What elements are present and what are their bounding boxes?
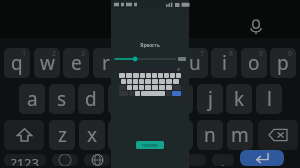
button[interactable]: m <box>227 120 253 150</box>
button[interactable]: d <box>78 84 104 114</box>
button[interactable]: Key <box>166 79 172 84</box>
button[interactable]: s <box>49 84 75 114</box>
button[interactable]: n <box>197 120 223 150</box>
staticText: 9 <box>259 49 264 59</box>
button[interactable]: . <box>212 154 234 166</box>
button[interactable]: Enter <box>240 150 284 166</box>
button[interactable]: Key <box>146 73 151 78</box>
staticText: o <box>248 50 260 76</box>
staticText: d <box>85 86 97 112</box>
staticText: 7 <box>200 49 205 59</box>
button[interactable]: u <box>182 48 208 78</box>
button[interactable]: i <box>211 48 237 78</box>
button[interactable]: Key <box>140 73 145 78</box>
staticText: g <box>144 86 156 112</box>
button[interactable]: Key <box>127 79 132 84</box>
staticText: 0 <box>288 49 293 59</box>
staticText: 3 <box>81 49 86 59</box>
button[interactable]: Key <box>139 79 144 84</box>
button[interactable]: Key <box>121 79 126 84</box>
button[interactable]: Key <box>145 85 151 90</box>
button[interactable]: Space <box>116 154 206 166</box>
button[interactable]: Key <box>159 79 165 84</box>
button[interactable]: Key <box>152 73 157 78</box>
button[interactable]: Key <box>133 85 138 90</box>
staticText: Яркость <box>111 42 189 49</box>
button[interactable]: Key <box>152 85 158 90</box>
button[interactable]: Emoji <box>52 154 78 166</box>
button[interactable]: a <box>19 84 45 114</box>
button[interactable]: Key <box>133 79 138 84</box>
staticText: p <box>277 50 289 76</box>
button[interactable]: ГОТОВО <box>136 141 164 149</box>
button[interactable]: Key <box>159 85 165 90</box>
button[interactable]: Key <box>145 79 151 84</box>
staticText: n <box>204 122 216 148</box>
button[interactable]: Key <box>176 73 181 78</box>
staticText: 5 <box>140 49 145 59</box>
staticText: 8 <box>229 49 234 59</box>
button[interactable]: y <box>152 48 178 78</box>
staticText: u <box>189 50 201 76</box>
staticText: q <box>11 50 23 76</box>
button[interactable]: Space <box>141 91 165 96</box>
staticText: i <box>222 50 227 76</box>
button[interactable]: Language <box>135 91 140 96</box>
button[interactable]: Key <box>164 73 169 78</box>
staticText: h <box>174 86 186 112</box>
button[interactable]: w <box>34 48 60 78</box>
staticText: a <box>27 86 38 112</box>
button[interactable]: Key <box>119 73 125 78</box>
button[interactable]: Key <box>127 85 132 90</box>
button[interactable]: Key <box>133 73 139 78</box>
button[interactable]: q <box>4 48 30 78</box>
button[interactable]: Enter <box>172 91 181 96</box>
button[interactable] <box>115 54 186 64</box>
staticText: t <box>132 50 139 76</box>
staticText: 1 <box>22 49 27 59</box>
button[interactable]: Key <box>152 79 158 84</box>
button[interactable]: z <box>49 120 75 150</box>
button[interactable]: j <box>197 84 223 114</box>
button[interactable]: Shift <box>4 120 44 150</box>
staticText: y <box>160 50 170 76</box>
staticText: m <box>231 122 249 148</box>
button[interactable]: Key <box>126 73 132 78</box>
button[interactable]: l <box>256 84 282 114</box>
staticText: 2 <box>52 49 57 59</box>
button[interactable]: e <box>63 48 89 78</box>
staticText: w <box>40 50 55 76</box>
button[interactable]: Voice input <box>243 14 269 40</box>
staticText: l <box>267 86 272 112</box>
button[interactable]: p <box>270 48 296 78</box>
button[interactable]: x <box>79 120 105 150</box>
button[interactable]: r <box>93 48 119 78</box>
button[interactable]: Key <box>166 85 172 90</box>
button[interactable]: ?123 <box>4 154 46 166</box>
staticText: j <box>208 86 213 112</box>
staticText: ?123 <box>11 154 39 166</box>
button[interactable]: f <box>108 84 134 114</box>
staticText: z <box>58 122 67 148</box>
button[interactable]: Key <box>139 85 144 90</box>
button[interactable]: Key <box>170 73 175 78</box>
button[interactable]: k <box>226 84 252 114</box>
button[interactable]: v <box>138 120 164 150</box>
staticText: v <box>146 122 156 148</box>
button[interactable]: t <box>122 48 148 78</box>
button[interactable]: Change language <box>84 154 110 166</box>
button[interactable]: Key <box>158 73 163 78</box>
button[interactable]: o <box>241 48 267 78</box>
button[interactable]: Backspace <box>258 120 298 150</box>
button[interactable]: h <box>167 84 193 114</box>
button[interactable]: Key <box>173 79 179 84</box>
button[interactable]: g <box>137 84 163 114</box>
